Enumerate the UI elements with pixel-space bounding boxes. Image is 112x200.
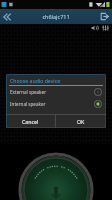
button[interactable]: Volume xyxy=(90,24,99,32)
staticText: Internal speaker xyxy=(10,101,94,107)
button[interactable]: Back xyxy=(0,10,14,24)
button[interactable]: Double click to listen xyxy=(8,154,104,200)
staticText: ch6lajc711 xyxy=(42,13,70,20)
staticText: OK xyxy=(77,118,85,125)
button[interactable]: Cancel xyxy=(6,115,55,128)
staticText: Choose audio device xyxy=(10,77,61,84)
button[interactable]: Equalizer xyxy=(101,24,110,32)
button[interactable]: OK xyxy=(56,115,106,128)
staticText: External speaker xyxy=(10,89,94,95)
staticText: Cancel xyxy=(22,118,39,125)
button[interactable]: Internal speaker xyxy=(6,98,106,110)
button[interactable]: Exit xyxy=(99,11,110,22)
button[interactable]: External speaker xyxy=(6,86,106,98)
